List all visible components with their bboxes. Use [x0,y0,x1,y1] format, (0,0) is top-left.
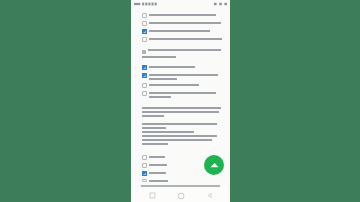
button[interactable] [142,72,223,80]
button[interactable]: Recents [145,189,159,202]
button[interactable] [142,64,223,70]
button[interactable] [142,178,223,182]
button[interactable] [142,90,223,98]
button[interactable] [142,12,223,18]
button[interactable] [142,82,223,88]
button[interactable]: Back [202,189,216,202]
button[interactable] [142,170,223,176]
button[interactable] [142,162,223,168]
button[interactable]: Scroll to top [204,155,224,175]
button[interactable] [142,28,223,34]
button[interactable]: Home [174,189,188,202]
button[interactable] [142,36,223,42]
button[interactable] [142,154,223,160]
button[interactable] [142,20,223,26]
